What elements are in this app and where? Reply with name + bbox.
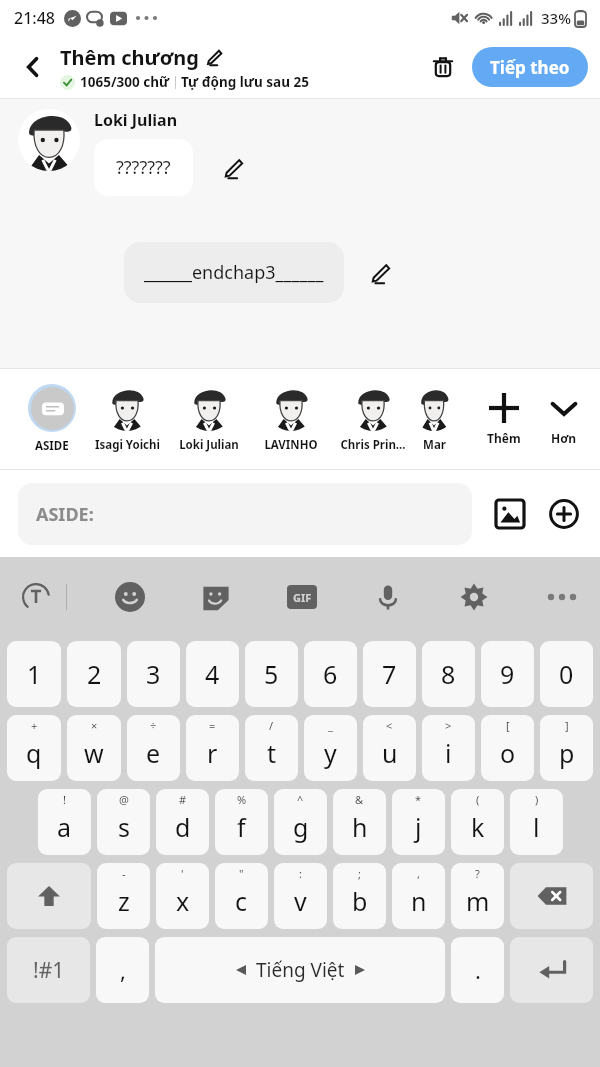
button[interactable]: ' bbox=[156, 863, 209, 929]
button[interactable]: , bbox=[96, 937, 149, 1003]
button[interactable]: Back bbox=[10, 44, 56, 90]
button[interactable]: " bbox=[215, 863, 268, 929]
button[interactable]: Stickers bbox=[194, 575, 238, 619]
staticText: # bbox=[179, 792, 187, 807]
staticText: 1 bbox=[27, 657, 42, 691]
button[interactable]: Thêm bbox=[474, 393, 534, 446]
button[interactable]: Add bbox=[540, 490, 588, 538]
staticText: g bbox=[293, 810, 309, 844]
button[interactable]: / bbox=[245, 715, 298, 781]
button[interactable]: GIF bbox=[280, 575, 324, 619]
button[interactable]: Tiếng Việt bbox=[155, 937, 445, 1003]
button[interactable]: . bbox=[451, 937, 504, 1003]
button[interactable]: ASIDE: bbox=[18, 483, 472, 545]
staticText: x bbox=[176, 884, 190, 918]
button[interactable]: Mar bbox=[414, 385, 454, 453]
button[interactable]: + bbox=[7, 715, 61, 781]
button[interactable]: ??????? bbox=[94, 139, 193, 196]
button[interactable]: Shift bbox=[7, 863, 91, 929]
button[interactable]: > bbox=[422, 715, 475, 781]
staticText: Tiếng Việt bbox=[256, 957, 345, 983]
staticText: 4 bbox=[205, 657, 220, 691]
staticText: ! bbox=[63, 792, 66, 807]
button[interactable]: Backspace bbox=[510, 863, 593, 929]
button[interactable]: Translate bbox=[14, 575, 58, 619]
button[interactable]: Settings bbox=[452, 575, 496, 619]
button[interactable]: Voice input bbox=[366, 575, 410, 619]
staticText: , bbox=[417, 866, 420, 881]
staticText: % bbox=[237, 792, 247, 807]
staticText: 3 bbox=[146, 657, 161, 691]
button[interactable]: ] bbox=[540, 715, 593, 781]
button[interactable]: 8 bbox=[422, 641, 475, 707]
staticText: 1065/300 chữ bbox=[80, 73, 170, 91]
staticText: Thêm bbox=[487, 430, 521, 446]
button[interactable]: Delete bbox=[420, 44, 466, 90]
button[interactable]: 7 bbox=[363, 641, 416, 707]
button[interactable]: ASIDE bbox=[18, 384, 86, 454]
button[interactable]: ; bbox=[333, 863, 386, 929]
staticText: h bbox=[352, 810, 368, 844]
button[interactable]: ^ bbox=[274, 789, 327, 855]
button[interactable]: × bbox=[67, 715, 121, 781]
button[interactable]: 0 bbox=[540, 641, 593, 707]
button[interactable]: ) bbox=[510, 789, 563, 855]
staticText: ASIDE: bbox=[36, 502, 94, 527]
staticText: " bbox=[239, 866, 244, 881]
button[interactable]: 6 bbox=[304, 641, 357, 707]
staticText: 5 bbox=[264, 657, 279, 691]
button[interactable]: Isagi Yoichi bbox=[86, 385, 168, 453]
button[interactable]: % bbox=[215, 789, 268, 855]
button[interactable]: Hơn bbox=[534, 393, 594, 446]
button[interactable]: & bbox=[333, 789, 386, 855]
button[interactable]: Tiếp theo bbox=[472, 47, 588, 87]
staticText: u bbox=[382, 736, 398, 770]
staticText: ( bbox=[476, 792, 480, 807]
staticText: = bbox=[209, 718, 216, 733]
staticText: Tiếp theo bbox=[490, 56, 570, 79]
button[interactable]: ______endchap3______ bbox=[124, 242, 344, 303]
button[interactable]: LAVINHO bbox=[250, 385, 332, 453]
staticText: 2 bbox=[87, 657, 102, 691]
button[interactable]: 2 bbox=[67, 641, 121, 707]
button[interactable]: = bbox=[186, 715, 239, 781]
button[interactable]: More options bbox=[538, 575, 582, 619]
button[interactable]: _ bbox=[304, 715, 357, 781]
button[interactable]: Add image bbox=[486, 490, 534, 538]
button[interactable]: : bbox=[274, 863, 327, 929]
staticText: Isagi Yoichi bbox=[95, 437, 160, 453]
button[interactable]: 4 bbox=[186, 641, 239, 707]
staticText: y bbox=[324, 736, 337, 770]
button[interactable]: Enter bbox=[510, 937, 593, 1003]
button[interactable]: Emoji bbox=[108, 575, 152, 619]
button[interactable]: * bbox=[392, 789, 445, 855]
button[interactable]: [ bbox=[481, 715, 534, 781]
button[interactable]: Edit message bbox=[362, 256, 396, 290]
button[interactable]: @ bbox=[97, 789, 150, 855]
staticText: Hơn bbox=[551, 430, 577, 446]
staticText: ] bbox=[565, 718, 569, 733]
button[interactable]: ! bbox=[38, 789, 91, 855]
button[interactable]: ÷ bbox=[127, 715, 180, 781]
button[interactable]: < bbox=[363, 715, 416, 781]
button[interactable]: ? bbox=[451, 863, 504, 929]
button[interactable]: 3 bbox=[127, 641, 180, 707]
button[interactable]: Loki Julian bbox=[168, 385, 250, 453]
button[interactable]: 5 bbox=[245, 641, 298, 707]
staticText: 21:48 bbox=[14, 7, 55, 29]
button[interactable]: - bbox=[97, 863, 150, 929]
staticText: !#1 bbox=[33, 956, 65, 985]
button[interactable]: Edit message bbox=[215, 151, 249, 185]
button[interactable]: Chris Prin... bbox=[332, 385, 414, 453]
staticText: Thêm chương bbox=[60, 44, 199, 71]
staticText: / bbox=[269, 718, 274, 733]
button[interactable]: # bbox=[156, 789, 209, 855]
button[interactable]: Symbols bbox=[7, 937, 90, 1003]
staticText: q bbox=[26, 736, 42, 770]
staticText: 9 bbox=[500, 657, 515, 691]
button[interactable]: ( bbox=[451, 789, 504, 855]
button[interactable]: 9 bbox=[481, 641, 534, 707]
button[interactable]: , bbox=[392, 863, 445, 929]
staticText: Mar bbox=[423, 437, 446, 453]
button[interactable]: 1 bbox=[7, 641, 61, 707]
